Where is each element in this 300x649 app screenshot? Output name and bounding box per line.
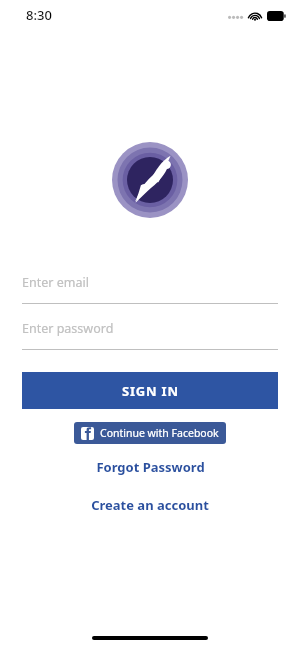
- staticText: SIGN IN: [122, 382, 179, 400]
- staticText: Continue with Facebook: [100, 426, 219, 440]
- staticText: Enter password: [22, 320, 114, 337]
- staticText: Enter email: [22, 274, 89, 291]
- button[interactable]: Enter email: [22, 274, 278, 304]
- button[interactable]: Forgot Password: [0, 458, 300, 476]
- staticText: 8:30: [26, 6, 52, 24]
- button[interactable]: Enter password: [22, 320, 278, 350]
- button[interactable]: Facebook: [74, 422, 226, 444]
- staticText: Create an account: [91, 496, 209, 514]
- other: Facebook: [81, 427, 94, 440]
- button[interactable]: Create an account: [0, 496, 300, 514]
- button[interactable]: SIGN IN: [22, 372, 278, 409]
- staticText: Forgot Password: [96, 458, 205, 476]
- other: App logo: [112, 142, 188, 218]
